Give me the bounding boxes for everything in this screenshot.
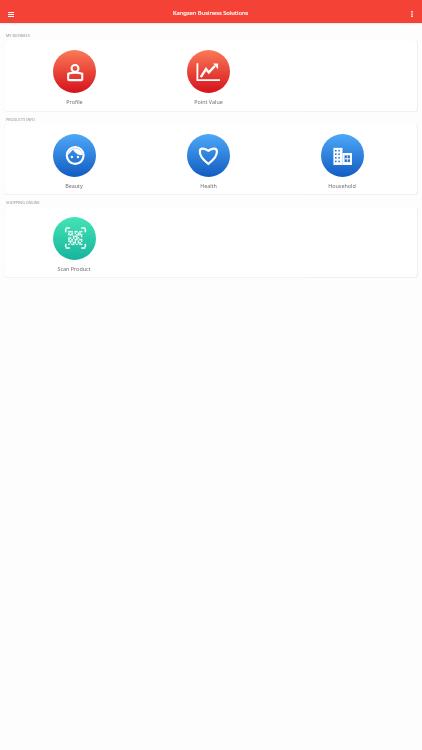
button[interactable]: Beauty <box>7 124 141 194</box>
staticText: Household <box>328 182 356 189</box>
staticText: Scan Product <box>57 265 91 272</box>
button[interactable]: Household <box>275 124 409 194</box>
button[interactable]: Open navigation menu <box>0 5 21 23</box>
button[interactable]: Health <box>141 124 275 194</box>
staticText: MY BUSINESS <box>6 33 30 38</box>
staticText: SHOPPING ONLINE <box>6 200 40 205</box>
staticText: PRODUCTS INFO <box>6 117 36 122</box>
staticText: Point Value <box>194 98 223 105</box>
button[interactable]: Point Value <box>141 41 275 111</box>
staticText: Health <box>200 182 217 189</box>
button[interactable]: Profile <box>7 41 141 111</box>
button[interactable]: Scan Product <box>7 207 141 277</box>
staticText: Profile <box>66 98 83 105</box>
staticText: Beauty <box>65 182 83 189</box>
button[interactable]: More options <box>401 5 422 23</box>
staticText: Kangzen Business Solutions <box>173 9 249 17</box>
